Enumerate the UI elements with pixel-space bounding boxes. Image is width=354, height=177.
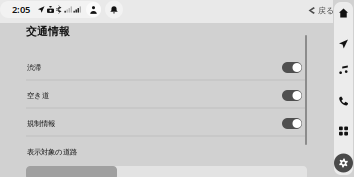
staticText: 戻る <box>318 6 334 15</box>
staticText: 規制情報 <box>27 119 55 128</box>
button[interactable] <box>26 166 307 177</box>
staticText: 表示対象の道路 <box>27 147 77 157</box>
button[interactable]: 渋滞 <box>0 53 333 81</box>
staticText: 交通情報 <box>26 25 70 38</box>
button[interactable]: 空き道 <box>0 81 333 109</box>
button[interactable]: Maps <box>334 33 353 55</box>
staticText: 空き道 <box>27 91 49 100</box>
button[interactable]: Profile <box>86 2 101 17</box>
button[interactable]: Settings <box>334 153 353 172</box>
staticText: 渋滞 <box>27 63 41 72</box>
button[interactable]: Phone <box>334 90 353 112</box>
staticText: 2:05 <box>12 3 30 16</box>
button[interactable]: 戻る <box>308 3 334 17</box>
button[interactable]: 規制情報 <box>0 109 333 137</box>
button[interactable]: Home <box>334 2 353 24</box>
button[interactable]: Music <box>334 59 353 81</box>
button[interactable]: Notifications <box>105 0 123 18</box>
button[interactable]: Apps <box>334 120 353 142</box>
